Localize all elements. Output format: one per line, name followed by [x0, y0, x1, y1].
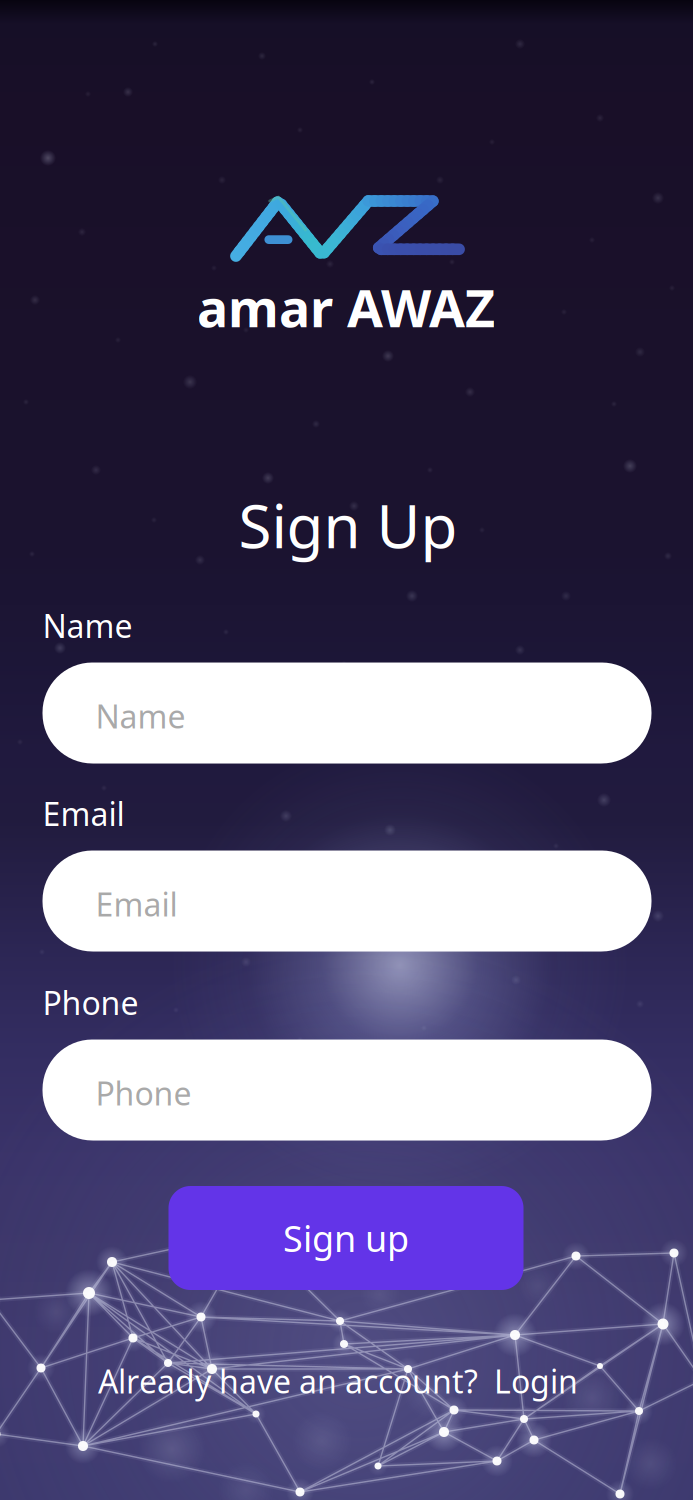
- button[interactable]: Already have an account? Login: [98, 1360, 578, 1402]
- button[interactable]: Sign up: [168, 1186, 523, 1290]
- button[interactable]: Phone: [42, 1039, 651, 1140]
- staticText: amar AWAZ: [197, 272, 495, 342]
- staticText: Email: [42, 792, 124, 835]
- staticText: Name: [42, 604, 132, 647]
- staticText: Name: [95, 695, 185, 737]
- button[interactable]: Email: [42, 850, 651, 951]
- staticText: Phone: [95, 1072, 191, 1114]
- staticText: Sign up: [283, 1214, 409, 1262]
- staticText: Phone: [42, 981, 138, 1024]
- staticText: Email: [95, 883, 177, 925]
- staticText: Already have an account? Login: [98, 1360, 578, 1402]
- button[interactable]: Name: [42, 662, 651, 763]
- staticText: Sign Up: [238, 485, 457, 565]
